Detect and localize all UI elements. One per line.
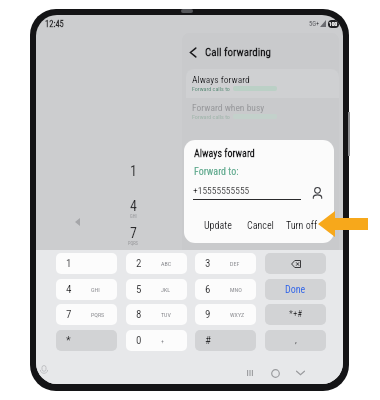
button[interactable]: Recents — [241, 364, 259, 382]
button[interactable]: Done — [265, 279, 326, 300]
staticText: + — [161, 337, 164, 344]
staticText: TUV — [161, 311, 171, 318]
button[interactable]: 7 — [56, 304, 117, 325]
staticText: Always forward — [194, 148, 255, 160]
staticText: +15555555555 — [193, 185, 250, 196]
staticText: 6 — [205, 283, 211, 296]
button[interactable]: Backspace — [265, 253, 326, 274]
staticText: 8 — [136, 308, 142, 321]
staticText: PQRS — [91, 311, 105, 318]
button[interactable]: *+# — [265, 304, 326, 325]
staticText: 4 — [130, 198, 137, 214]
button[interactable]: 4 — [114, 198, 152, 224]
staticText: 5G+ — [309, 20, 320, 28]
staticText: 4 — [66, 283, 72, 296]
button[interactable]: 1 — [56, 253, 117, 274]
button[interactable]: 0 — [126, 330, 187, 351]
staticText: 1 — [66, 257, 72, 270]
staticText: Update — [204, 220, 232, 232]
button[interactable]: 3 — [195, 253, 256, 274]
staticText: PQRS — [128, 241, 138, 246]
staticText: Cancel — [247, 220, 274, 232]
staticText: 0 — [136, 334, 142, 347]
staticText: *+# — [289, 309, 303, 320]
staticText: Done — [285, 284, 306, 296]
staticText: * — [66, 334, 71, 347]
button[interactable]: 7 — [114, 225, 152, 251]
staticText: Turn off — [286, 220, 318, 232]
button[interactable]: 6 — [195, 279, 256, 300]
button[interactable]: Turn off — [282, 217, 322, 235]
button[interactable]: Back — [189, 46, 271, 59]
other: Back — [189, 47, 197, 58]
staticText: 3 — [205, 257, 211, 270]
button[interactable]: 9 — [195, 304, 256, 325]
button[interactable]: 8 — [126, 304, 187, 325]
button[interactable]: * — [56, 330, 117, 351]
button[interactable]: 1 — [114, 163, 152, 189]
staticText: WXYZ — [230, 311, 245, 318]
staticText: 7 — [130, 225, 137, 241]
staticText: GHI — [130, 214, 137, 219]
staticText: 7 — [66, 308, 72, 321]
staticText: Forward calls to — [192, 113, 230, 120]
button[interactable]: # — [195, 330, 256, 351]
button[interactable]: Home — [266, 364, 284, 382]
staticText: 1 — [130, 163, 137, 179]
button[interactable]: Forward when busy — [192, 102, 277, 120]
staticText: ABC — [161, 260, 172, 267]
staticText: 9 — [205, 308, 211, 321]
button[interactable]: Cancel — [240, 217, 280, 235]
staticText: Always forward — [192, 74, 250, 85]
staticText: DEF — [230, 260, 240, 267]
other: Backspace — [291, 260, 301, 268]
button[interactable]: Update — [198, 217, 238, 235]
staticText: , — [295, 335, 297, 346]
staticText: Call forwarding — [205, 46, 271, 59]
staticText: Forward to: — [194, 166, 239, 178]
staticText: JKL — [161, 286, 171, 293]
staticText: 100 — [329, 21, 338, 27]
button[interactable]: 5 — [126, 279, 187, 300]
button[interactable]: Choose contact — [312, 187, 323, 199]
button[interactable]: , — [265, 330, 326, 351]
staticText: MNO — [230, 286, 242, 293]
button[interactable]: Always forward — [186, 69, 339, 98]
staticText: GHI — [91, 286, 100, 293]
other: Voice input — [39, 365, 49, 376]
button[interactable]: 2 — [126, 253, 187, 274]
staticText: 2 — [136, 257, 142, 270]
button[interactable]: Back — [291, 364, 309, 382]
staticText: 5 — [136, 283, 142, 296]
staticText: Forward calls to — [192, 85, 230, 92]
staticText: Forward when busy — [192, 102, 265, 113]
staticText: 12:45 — [45, 19, 64, 29]
staticText: # — [205, 334, 212, 347]
button[interactable]: 4 — [56, 279, 117, 300]
